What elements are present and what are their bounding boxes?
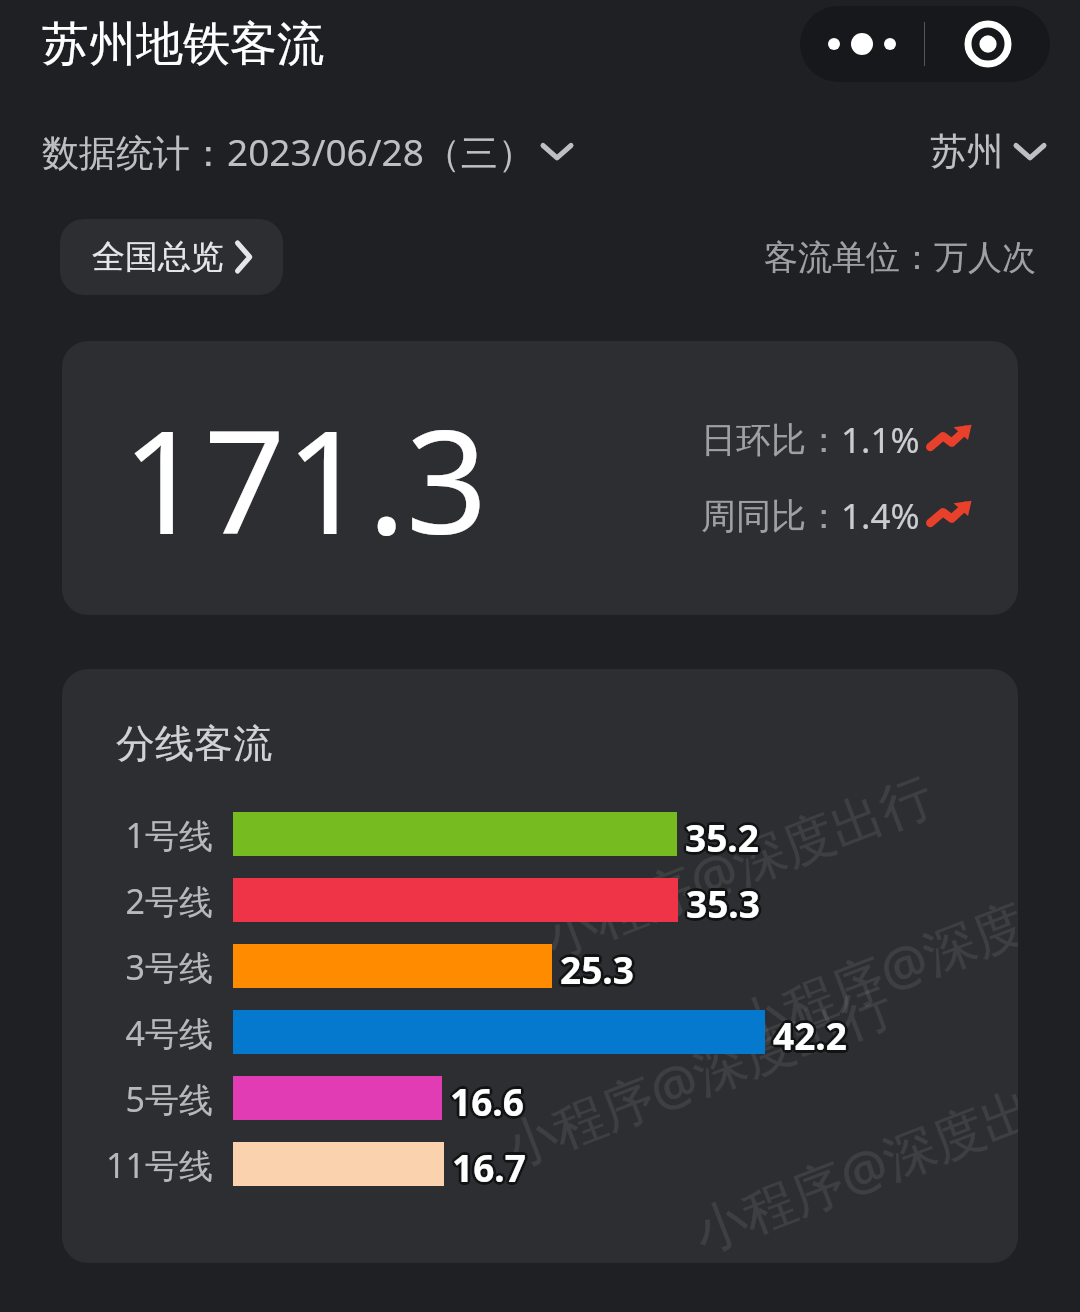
staticText: 35.2 [687, 814, 761, 858]
staticText: 16.6 [447, 1076, 521, 1120]
staticText: 3号线 [125, 944, 213, 988]
staticText: 25.3 [562, 946, 636, 990]
staticText: 25.3 [563, 944, 637, 988]
staticText: 35.2 [688, 812, 762, 856]
staticText: 25.3 [560, 944, 634, 988]
staticText: 35.3 [689, 878, 763, 922]
staticText: 客流单位：万人次 [764, 236, 1036, 279]
staticText: 苏州 [930, 128, 1004, 175]
staticText: 35.3 [684, 876, 758, 920]
button[interactable]: 数据统计：2023/06/28（三） [42, 126, 571, 177]
staticText: 16.7 [452, 1142, 526, 1186]
staticText: 35.2 [685, 812, 759, 856]
staticText: 16.6 [453, 1076, 527, 1120]
staticText: 分线客流 [116, 719, 272, 768]
staticText: 25.3 [557, 944, 631, 988]
staticText: 11号线 [106, 1142, 213, 1186]
staticText: 42.2 [773, 1010, 847, 1054]
staticText: 16.7 [450, 1144, 524, 1188]
staticText: 25.3 [560, 947, 634, 991]
staticText: 16.7 [452, 1139, 526, 1183]
button[interactable]: Close mini program [925, 6, 1050, 82]
staticText: 35.2 [687, 810, 761, 854]
staticText: 42.2 [773, 1007, 847, 1051]
button[interactable]: More options [800, 6, 1050, 82]
staticText: 16.7 [454, 1144, 528, 1188]
button[interactable]: 2号线 [62, 878, 1018, 922]
staticText: 16.7 [454, 1140, 528, 1184]
staticText: 35.2 [682, 812, 756, 856]
staticText: 35.3 [684, 880, 758, 924]
staticText: 171.3 [122, 381, 488, 576]
staticText: 16.6 [450, 1073, 524, 1117]
staticText: 1.1% [841, 416, 920, 464]
staticText: 日环比： [701, 418, 841, 462]
staticText: 25.3 [562, 942, 636, 986]
staticText: 2号线 [125, 878, 213, 922]
staticText: 周同比： [701, 494, 841, 538]
staticText: 35.3 [688, 876, 762, 920]
staticText: 42.2 [771, 1008, 845, 1052]
staticText: 42.2 [770, 1010, 844, 1054]
staticText: 35.3 [686, 878, 760, 922]
button[interactable]: 苏州 [930, 128, 1044, 175]
staticText: 16.7 [455, 1142, 529, 1186]
button[interactable]: 3号线 [62, 944, 1018, 988]
staticText: 16.7 [449, 1142, 523, 1186]
staticText: 16.7 [452, 1145, 526, 1189]
staticText: 35.2 [683, 814, 757, 858]
staticText: 35.3 [688, 880, 762, 924]
staticText: 小程序@深度出行 [493, 968, 902, 1181]
staticText: 35.3 [683, 878, 757, 922]
staticText: 25.3 [558, 942, 632, 986]
button[interactable]: 171.3 [62, 341, 1018, 615]
staticText: 16.6 [448, 1074, 522, 1118]
staticText: 25.3 [560, 941, 634, 985]
staticText: 小程序@深度出行 [723, 848, 1018, 1061]
button[interactable]: 5号线 [62, 1076, 1018, 1120]
staticText: 35.3 [686, 881, 760, 925]
staticText: 16.7 [450, 1140, 524, 1184]
staticText: 35.2 [685, 815, 759, 859]
staticText: 5号线 [125, 1076, 213, 1120]
button[interactable]: 1号线 [62, 812, 1018, 856]
staticText: 16.6 [452, 1078, 526, 1122]
staticText: 16.6 [450, 1076, 524, 1120]
staticText: 小程序@深度出行 [683, 1053, 1018, 1263]
staticText: 16.6 [450, 1079, 524, 1123]
staticText: 25.3 [558, 946, 632, 990]
button[interactable]: 全国总览 [60, 219, 283, 295]
button[interactable]: 11号线 [62, 1142, 1018, 1186]
staticText: 1.4% [841, 492, 920, 540]
staticText: 42.2 [775, 1012, 849, 1056]
staticText: 35.2 [683, 810, 757, 854]
staticText: 数据统计：2023/06/28（三） [42, 126, 535, 177]
staticText: 42.2 [776, 1010, 850, 1054]
staticText: 35.3 [686, 875, 760, 919]
staticText: 4号线 [125, 1010, 213, 1054]
staticText: 1号线 [125, 812, 213, 856]
staticText: 42.2 [773, 1013, 847, 1057]
staticText: 42.2 [775, 1008, 849, 1052]
staticText: 42.2 [771, 1012, 845, 1056]
button[interactable]: More options [800, 6, 924, 82]
staticText: 16.6 [448, 1078, 522, 1122]
staticText: 苏州地铁客流 [42, 15, 324, 74]
staticText: 16.6 [452, 1074, 526, 1118]
button[interactable]: 4号线 [62, 1010, 1018, 1054]
staticText: 小程序@深度出行 [533, 758, 942, 971]
staticText: 35.2 [685, 809, 759, 853]
staticText: 全国总览 [92, 236, 224, 278]
